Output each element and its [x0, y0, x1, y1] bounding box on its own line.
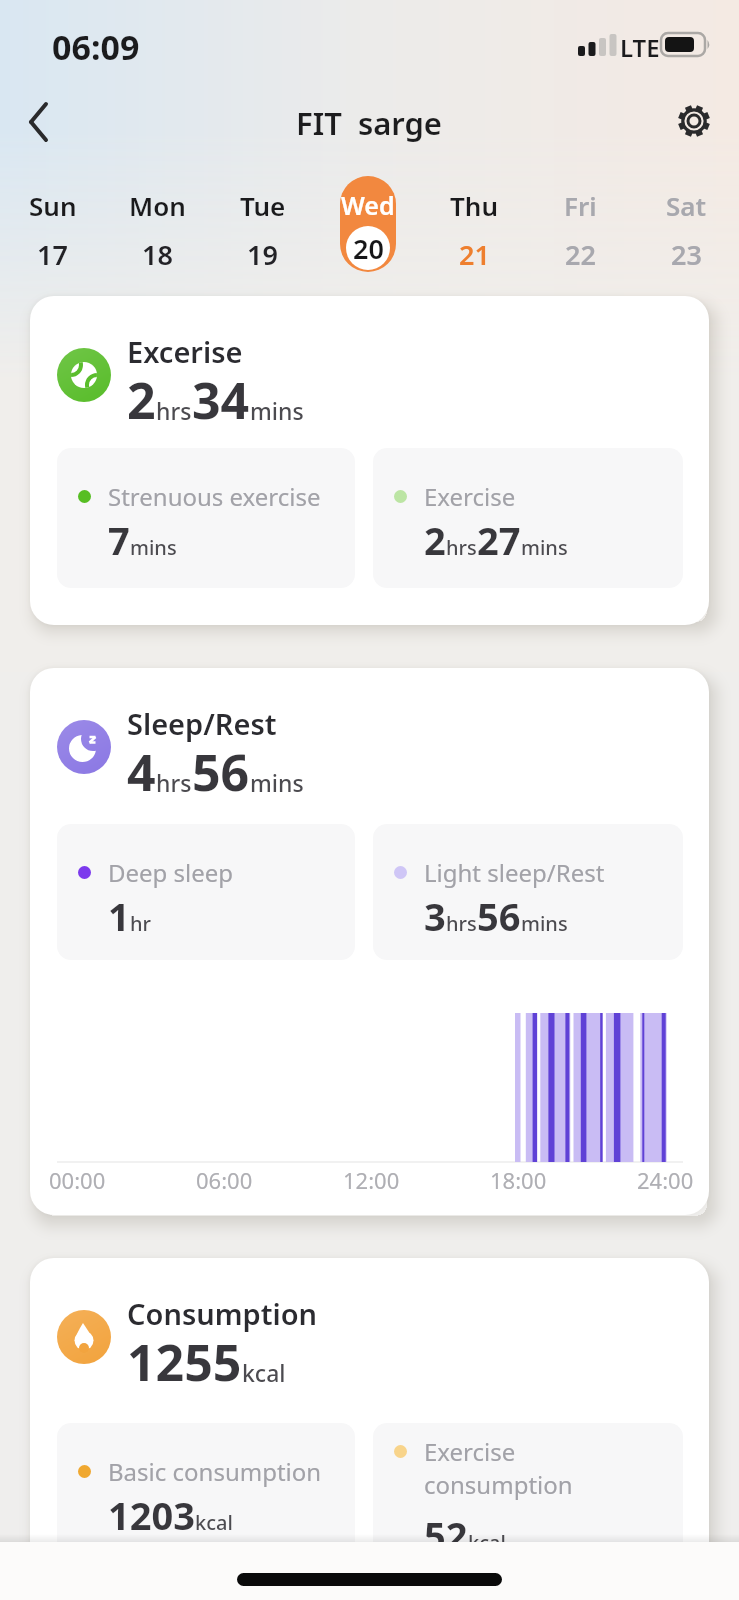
staticText: mins	[250, 767, 304, 798]
staticText: 56	[192, 738, 250, 806]
staticText: Sun	[29, 188, 77, 223]
staticText: Sleep/Rest	[127, 704, 277, 743]
button[interactable]: Light sleep/Rest	[373, 824, 683, 960]
staticText: hrs	[156, 767, 192, 798]
staticText: 22	[565, 236, 596, 273]
button[interactable]: Sleep/Rest	[30, 668, 709, 1215]
staticText: 12:00	[343, 1165, 400, 1195]
staticText: 06:00	[196, 1165, 253, 1195]
staticText: hrs	[446, 534, 477, 561]
button[interactable]: Exercise	[373, 1423, 683, 1563]
staticText: Light sleep/Rest	[424, 856, 605, 889]
staticText: 56	[477, 890, 521, 942]
staticText: Exercise	[424, 1435, 516, 1468]
staticText: hr	[130, 910, 151, 937]
staticText: Exercise	[424, 480, 516, 513]
staticText: Mon	[129, 188, 186, 223]
staticText: 06:09	[52, 24, 140, 70]
button[interactable]: Exercise	[373, 448, 683, 588]
staticText: 20	[353, 230, 384, 267]
button[interactable]: Mon	[105, 144, 210, 279]
staticText: Sat	[666, 188, 707, 223]
staticText: Deep sleep	[108, 856, 234, 889]
staticText: 27	[477, 514, 521, 566]
staticText: 21	[459, 236, 490, 273]
staticText: FIT sarge	[296, 102, 443, 144]
button[interactable]: Excerise	[30, 296, 709, 625]
staticText: 17	[37, 236, 68, 273]
staticText: Fri	[564, 188, 597, 223]
staticText: mins	[130, 534, 177, 561]
button[interactable]: Fri	[527, 144, 633, 279]
staticText: hrs	[156, 395, 192, 426]
staticText: hrs	[446, 910, 477, 937]
staticText: Excerise	[127, 332, 243, 371]
staticText: 3	[424, 890, 446, 942]
staticText: mins	[250, 395, 304, 426]
staticText: Basic consumption	[108, 1455, 322, 1488]
staticText: 52	[424, 1509, 468, 1561]
staticText: consumption	[424, 1468, 573, 1501]
staticText: 1255	[127, 1328, 242, 1396]
staticText: 2	[424, 514, 446, 566]
staticText: Consumption	[127, 1294, 318, 1333]
staticText: mins	[521, 534, 568, 561]
staticText: 23	[671, 236, 702, 273]
button[interactable]: Strenuous exercise	[57, 448, 355, 588]
staticText: 18:00	[490, 1165, 547, 1195]
staticText: Strenuous exercise	[108, 480, 321, 513]
button[interactable]	[16, 100, 60, 144]
staticText: 19	[247, 236, 278, 273]
staticText: 1203	[108, 1489, 195, 1541]
button[interactable]: Tue	[210, 144, 315, 279]
staticText: Thu	[450, 188, 498, 223]
staticText: mins	[521, 910, 568, 937]
button[interactable]: Sun	[0, 144, 105, 279]
staticText: 00:00	[49, 1165, 106, 1195]
button[interactable]: Thu	[421, 144, 527, 279]
staticText: kcal	[468, 1529, 506, 1556]
staticText: 34	[192, 366, 250, 434]
button[interactable]: Wed	[315, 144, 421, 279]
staticText: 1	[108, 890, 130, 942]
button[interactable]: Deep sleep	[57, 824, 355, 960]
button[interactable]: Basic consumption	[57, 1423, 355, 1563]
staticText: Tue	[240, 188, 286, 223]
staticText: 7	[108, 514, 130, 566]
staticText: kcal	[242, 1357, 286, 1388]
staticText: LTE	[620, 31, 660, 64]
staticText: 24:00	[637, 1165, 694, 1195]
staticText: Wed	[341, 188, 395, 222]
button[interactable]: Consumption	[30, 1258, 709, 1600]
staticText: 4	[127, 738, 156, 806]
staticText: kcal	[195, 1509, 233, 1536]
button[interactable]: Sat	[633, 144, 739, 279]
staticText: 18	[142, 236, 173, 273]
staticText: 2	[127, 366, 156, 434]
button[interactable]	[672, 99, 716, 143]
